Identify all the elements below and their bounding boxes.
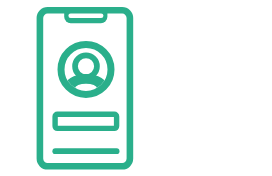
button[interactable]: Account name field [52, 112, 119, 132]
button[interactable]: Profile picture [58, 41, 115, 98]
button[interactable]: Account details [52, 145, 119, 157]
